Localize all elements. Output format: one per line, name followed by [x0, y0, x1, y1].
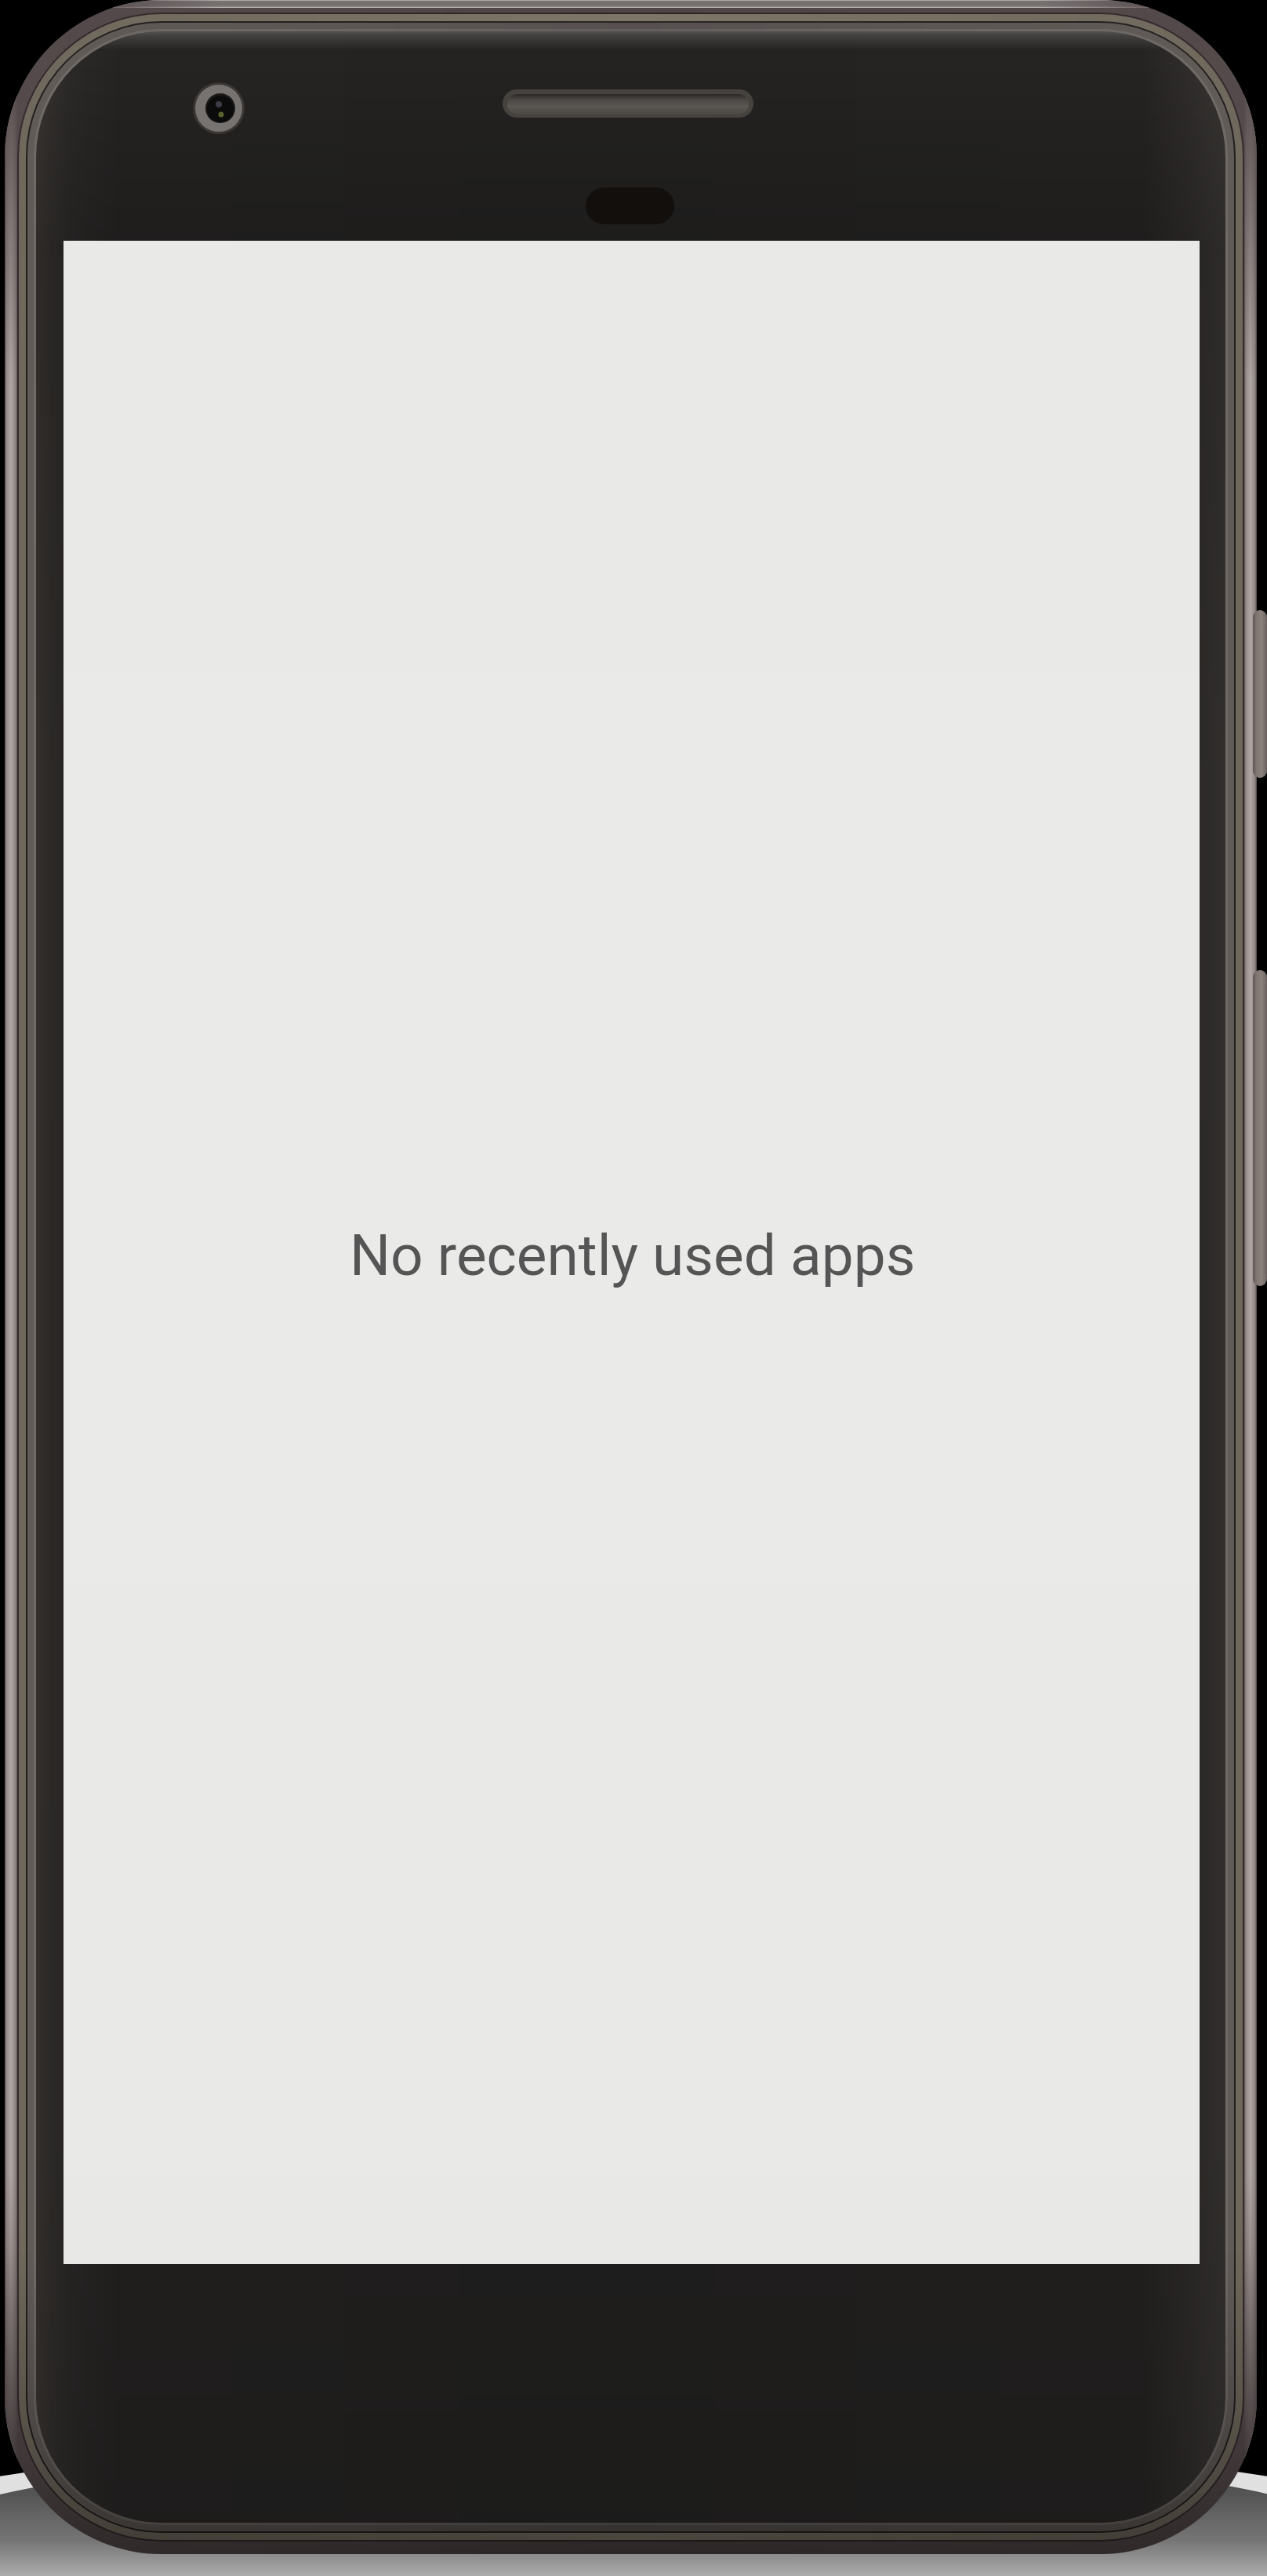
- button[interactable]: Power: [1247, 610, 1267, 778]
- button[interactable]: Volume: [1247, 970, 1267, 1286]
- button[interactable]: No recently used apps: [64, 241, 1200, 2264]
- staticText: No recently used apps: [350, 1222, 916, 1289]
